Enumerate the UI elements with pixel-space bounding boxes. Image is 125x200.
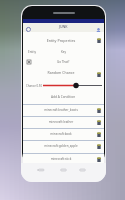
button[interactable]: Back xyxy=(35,165,46,174)
button[interactable]: Delete xyxy=(96,71,101,77)
button[interactable]: minecraft:leather xyxy=(23,116,104,128)
staticText: minecraft:golden_apple xyxy=(26,144,96,148)
button[interactable]: Recent apps xyxy=(77,165,88,174)
staticText: Entity xyxy=(28,50,36,54)
button[interactable]: Delete xyxy=(96,143,101,149)
button[interactable]: minecraft:leather_boots xyxy=(23,104,104,116)
button[interactable]: minecraft:golden_apple xyxy=(23,140,104,152)
button[interactable]: Delete xyxy=(96,156,101,162)
staticText: minecraft:book xyxy=(26,132,96,136)
staticText: Go That? xyxy=(57,60,70,64)
staticText: minecraft:stick xyxy=(26,157,96,161)
button[interactable]: Chance slider xyxy=(43,82,102,89)
button[interactable]: Toggle xyxy=(27,60,31,64)
staticText: Chance 0.50 xyxy=(26,84,42,88)
staticText: minecraft:leather_boots xyxy=(26,108,96,112)
button[interactable]: minecraft:stick xyxy=(23,153,104,165)
button[interactable]: Delete xyxy=(96,131,101,137)
staticText: Key xyxy=(61,50,67,54)
button[interactable]: Add A Condition xyxy=(23,94,104,100)
staticText: minecraft:leather xyxy=(26,120,96,124)
button[interactable]: Account xyxy=(95,27,101,33)
staticText: Random Chance xyxy=(26,70,96,75)
button[interactable]: Delete xyxy=(96,107,101,113)
staticText: Entity Properties xyxy=(26,38,96,43)
staticText: JUNK xyxy=(59,24,68,29)
button[interactable]: Info xyxy=(25,26,31,32)
staticText: Add A Condition xyxy=(51,95,76,99)
button[interactable]: Delete xyxy=(96,37,101,43)
button[interactable]: Delete xyxy=(96,119,101,125)
button[interactable]: Home xyxy=(58,165,69,174)
button[interactable]: minecraft:book xyxy=(23,128,104,140)
